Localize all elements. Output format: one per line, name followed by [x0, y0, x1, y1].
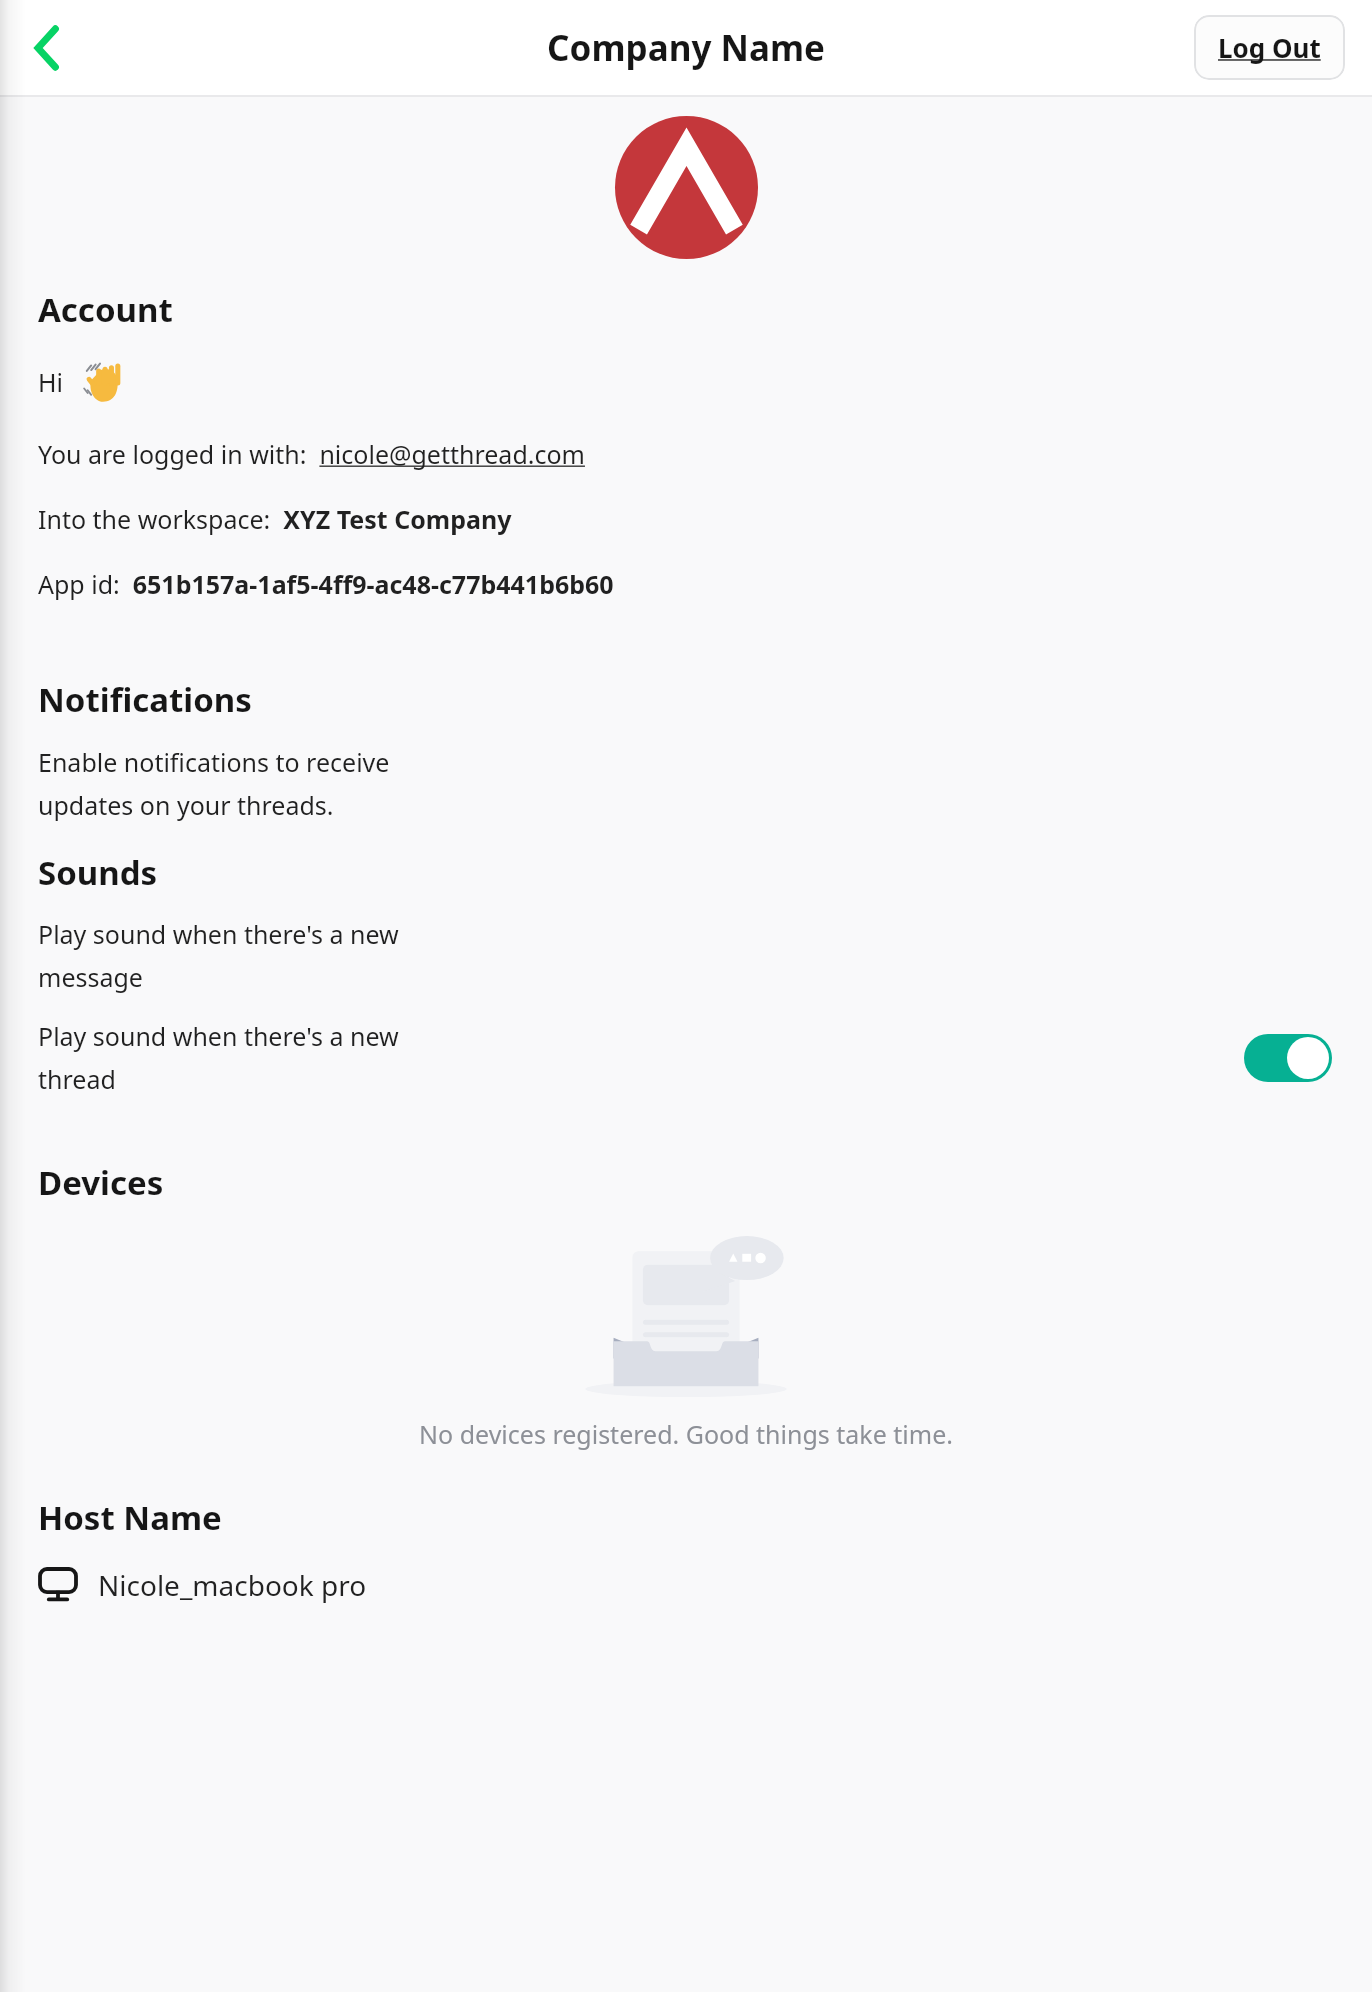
staticText: No devices registered. Good things take … — [38, 1417, 1334, 1451]
button[interactable]: Log Out — [1194, 15, 1345, 80]
button[interactable]: Play sound when there's a new thread — [0, 1019, 1372, 1096]
staticText: Hi — [38, 365, 63, 399]
staticText: Play sound when there's a new message — [38, 917, 399, 994]
button[interactable]: Play sound when there's a new message — [0, 917, 1372, 994]
staticText: App id: 651b157a-1af5-4ff9-ac48-c77b441b… — [38, 567, 614, 601]
staticText: Company Name — [547, 24, 825, 72]
staticText: Sounds — [38, 850, 158, 895]
staticText: You are logged in with: nicole@getthread… — [38, 437, 585, 471]
staticText: Devices — [38, 1160, 164, 1205]
staticText: Play sound when there's a new thread — [38, 1019, 399, 1096]
staticText: Account — [38, 287, 173, 332]
staticText: Into the workspace: XYZ Test Company — [38, 502, 512, 536]
button[interactable]: Nicole_macbook pro — [0, 1562, 1372, 1608]
staticText: Nicole_macbook pro — [98, 1566, 367, 1604]
staticText: Enable notifications to receive updates … — [38, 745, 390, 822]
staticText: Host Name — [38, 1495, 222, 1540]
staticText: Log Out — [1218, 30, 1321, 65]
button[interactable]: Back — [14, 15, 80, 81]
button[interactable]: Toggle sound for new thread — [1244, 1034, 1332, 1082]
staticText: Notifications — [38, 677, 252, 722]
